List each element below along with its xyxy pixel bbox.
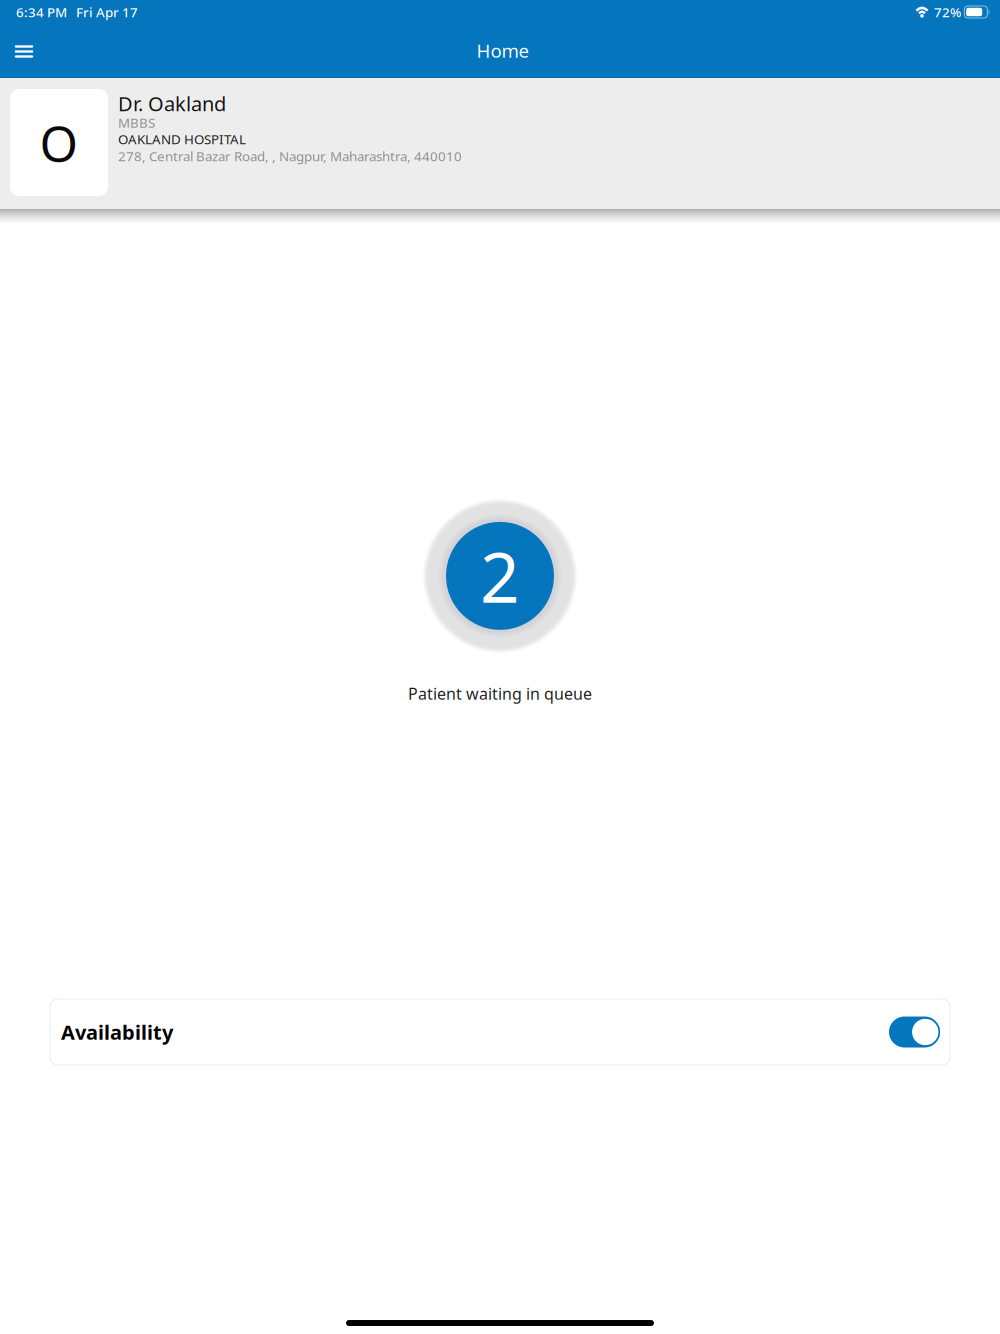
staticText: MBBS	[118, 114, 155, 131]
staticText: 6:34 PM	[16, 3, 67, 21]
staticText: Fri Apr 17	[76, 3, 138, 21]
staticText: Dr. Oakland	[118, 90, 226, 117]
staticText: O	[39, 110, 78, 175]
button[interactable]: Availability	[50, 999, 950, 1065]
staticText: 2	[480, 530, 520, 622]
staticText: OAKLAND HOSPITAL	[118, 130, 246, 148]
staticText: Patient waiting in queue	[408, 683, 592, 704]
button[interactable]: Menu	[2, 28, 46, 72]
staticText: Availability	[61, 1019, 173, 1045]
staticText: 72%	[934, 3, 961, 21]
staticText: Home	[476, 38, 529, 63]
staticText: 278, Central Bazar Road, , Nagpur, Mahar…	[118, 147, 462, 165]
